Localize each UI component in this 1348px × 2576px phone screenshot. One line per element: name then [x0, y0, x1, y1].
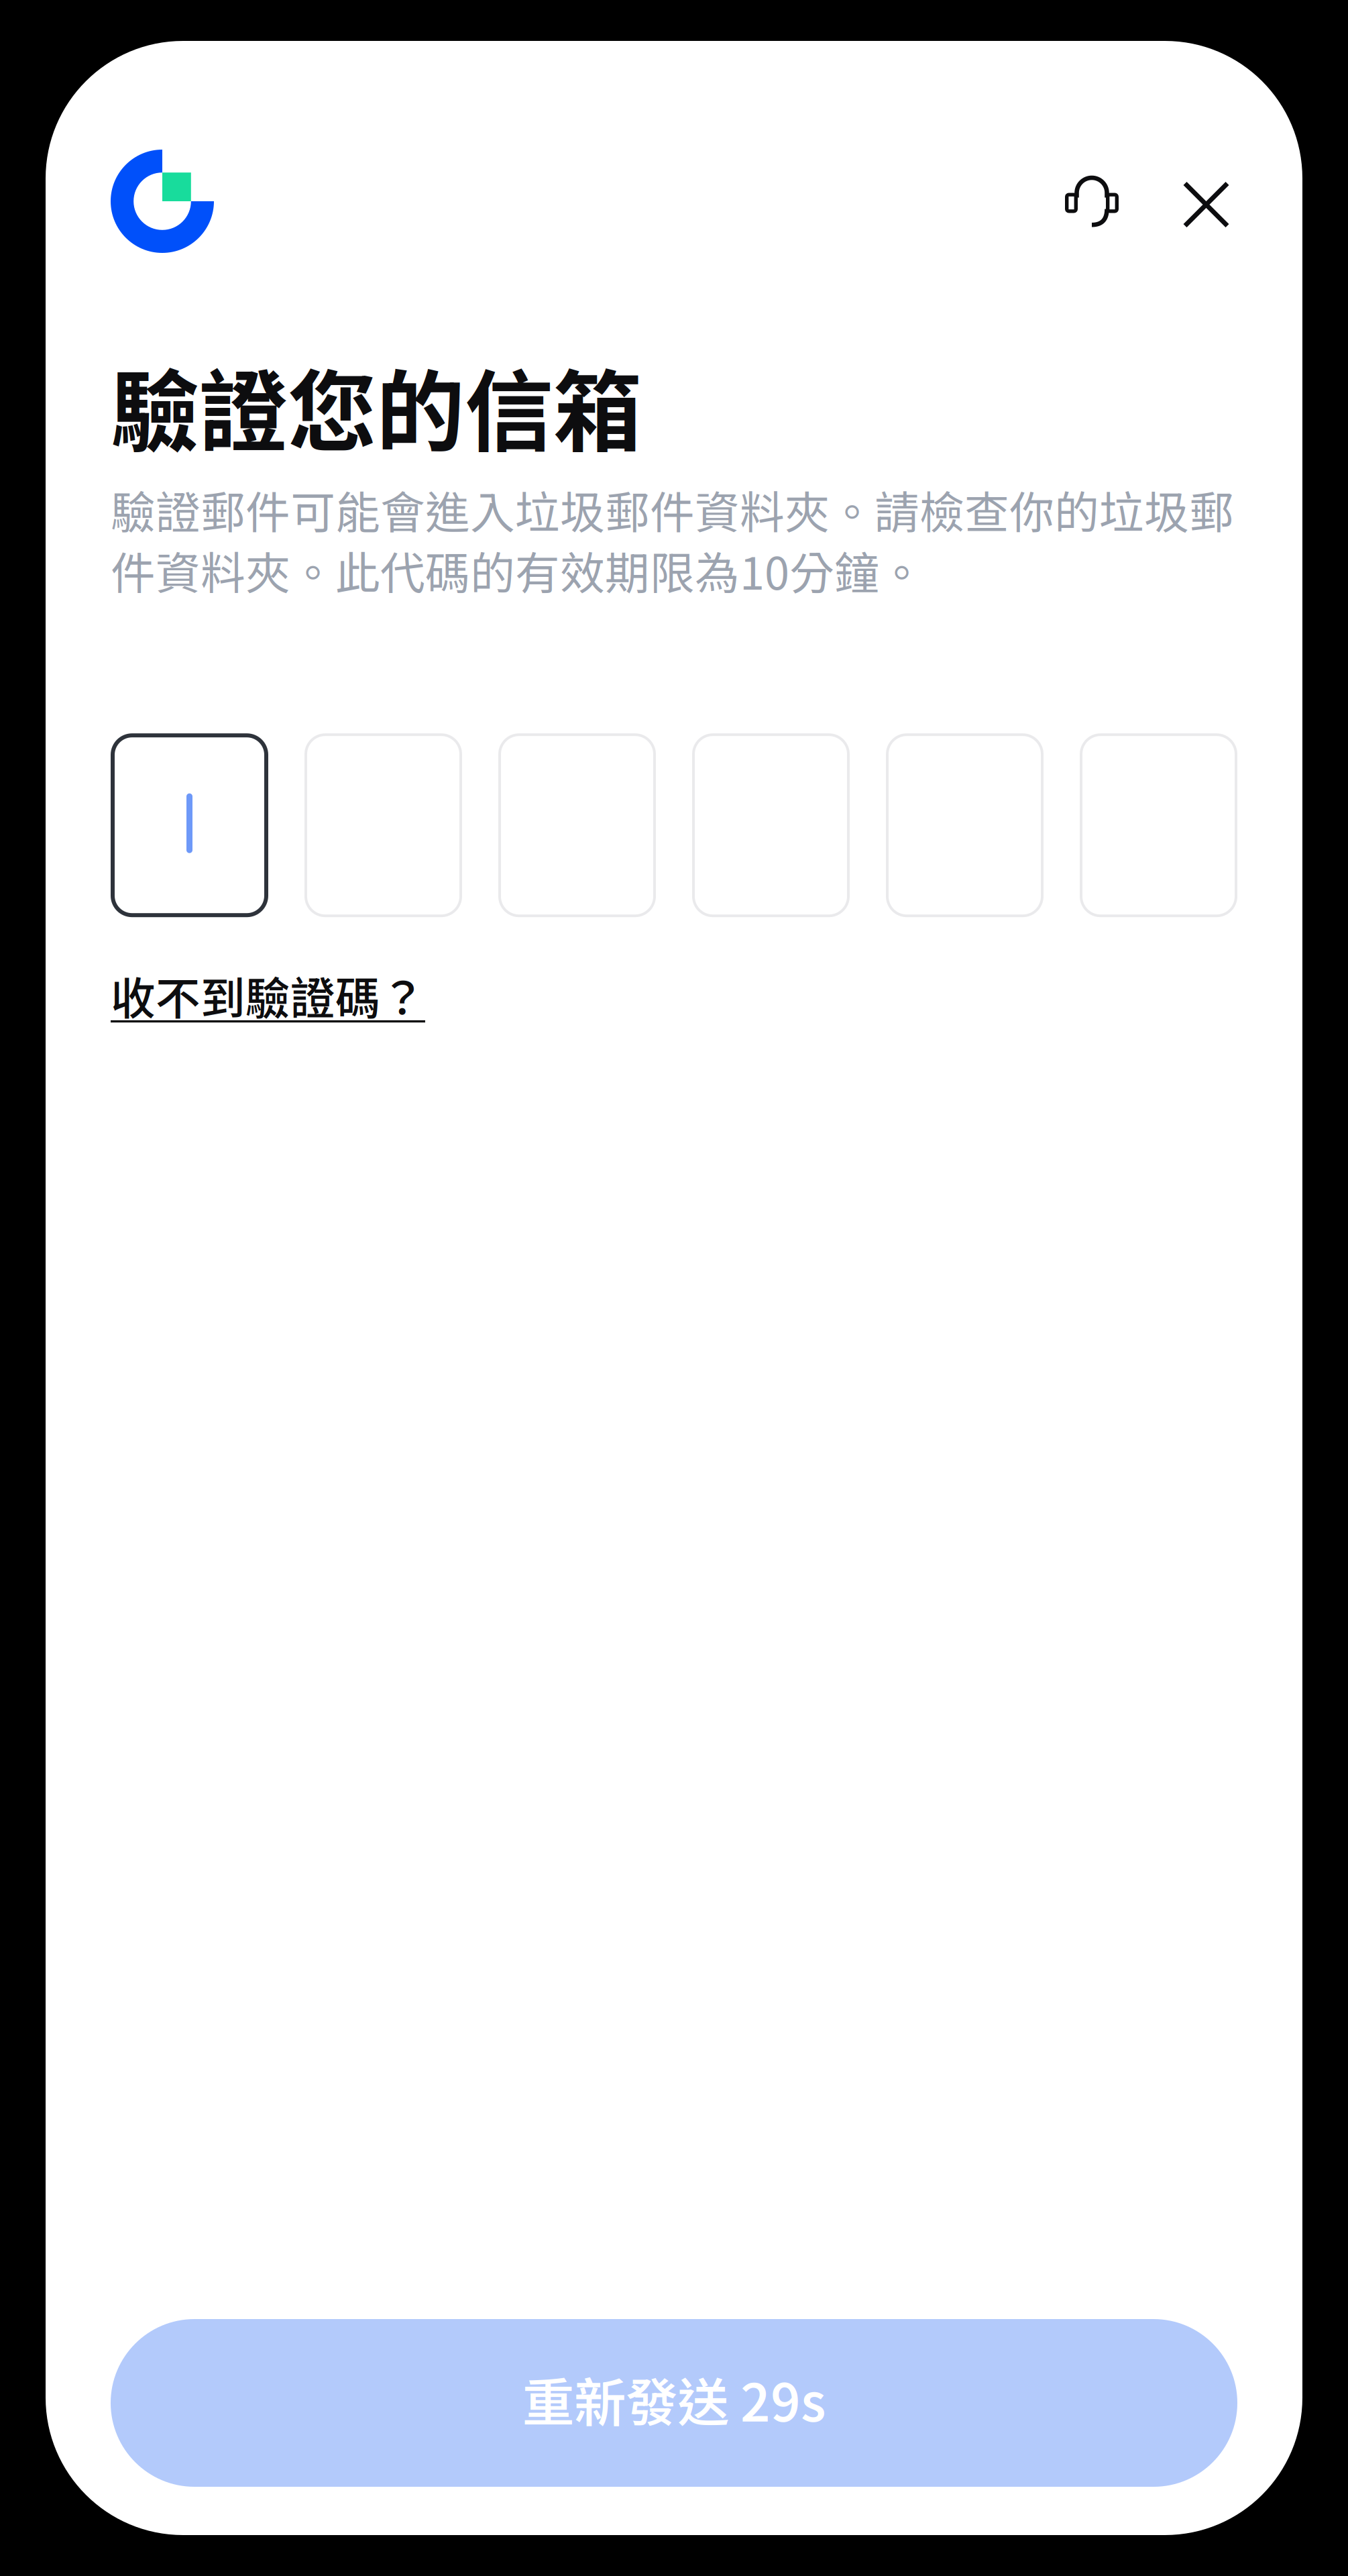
staticText: 重新發送 29s: [522, 2361, 826, 2436]
button[interactable]: Verification code digit 3: [498, 733, 656, 917]
button[interactable]: Verification code digit 2: [304, 733, 462, 917]
button[interactable]: 重新發送 29s: [111, 2319, 1237, 2487]
button[interactable]: 收不到驗證碼？: [111, 963, 425, 1028]
staticText: 驗證您的信箱: [111, 341, 642, 470]
button[interactable]: Close: [1160, 150, 1237, 253]
button[interactable]: Verification code digit 5: [886, 733, 1044, 917]
button[interactable]: Verification code digit 4: [692, 733, 850, 917]
staticText: 收不到驗證碼？: [111, 963, 425, 1028]
button[interactable]: Verification code digit 1: [111, 733, 268, 917]
button[interactable]: Customer support: [1065, 150, 1160, 253]
staticText: 驗證郵件可能會進入垃圾郵件資料夾。請檢查你的垃圾郵件資料夾。此代碼的有效期限為1…: [111, 477, 1234, 603]
button[interactable]: Verification code digit 6: [1080, 733, 1237, 917]
